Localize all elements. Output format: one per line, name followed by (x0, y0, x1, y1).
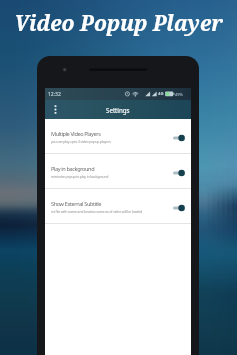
staticText: 12:32 (48, 91, 61, 98)
staticText: Multiple Video Players (51, 130, 101, 138)
staticText: Video Popup Player (0, 9, 237, 38)
button[interactable]: More options (45, 100, 64, 119)
button[interactable]: Multiple Video Players (45, 119, 191, 154)
staticText: Play in background (51, 165, 95, 173)
button[interactable]: Show External Subtitle (45, 189, 191, 224)
staticText: 4G (158, 91, 164, 97)
staticText: srt file with name and location same as … (51, 209, 143, 214)
staticText: 49% (175, 92, 183, 97)
staticText: you can play upto 3 video popup players (51, 139, 111, 144)
button[interactable]: Play in background (45, 154, 191, 189)
staticText: minimize popup to play in background (51, 174, 109, 179)
staticText: Show External Subtitle (51, 200, 102, 208)
staticText: Settings (106, 106, 130, 114)
